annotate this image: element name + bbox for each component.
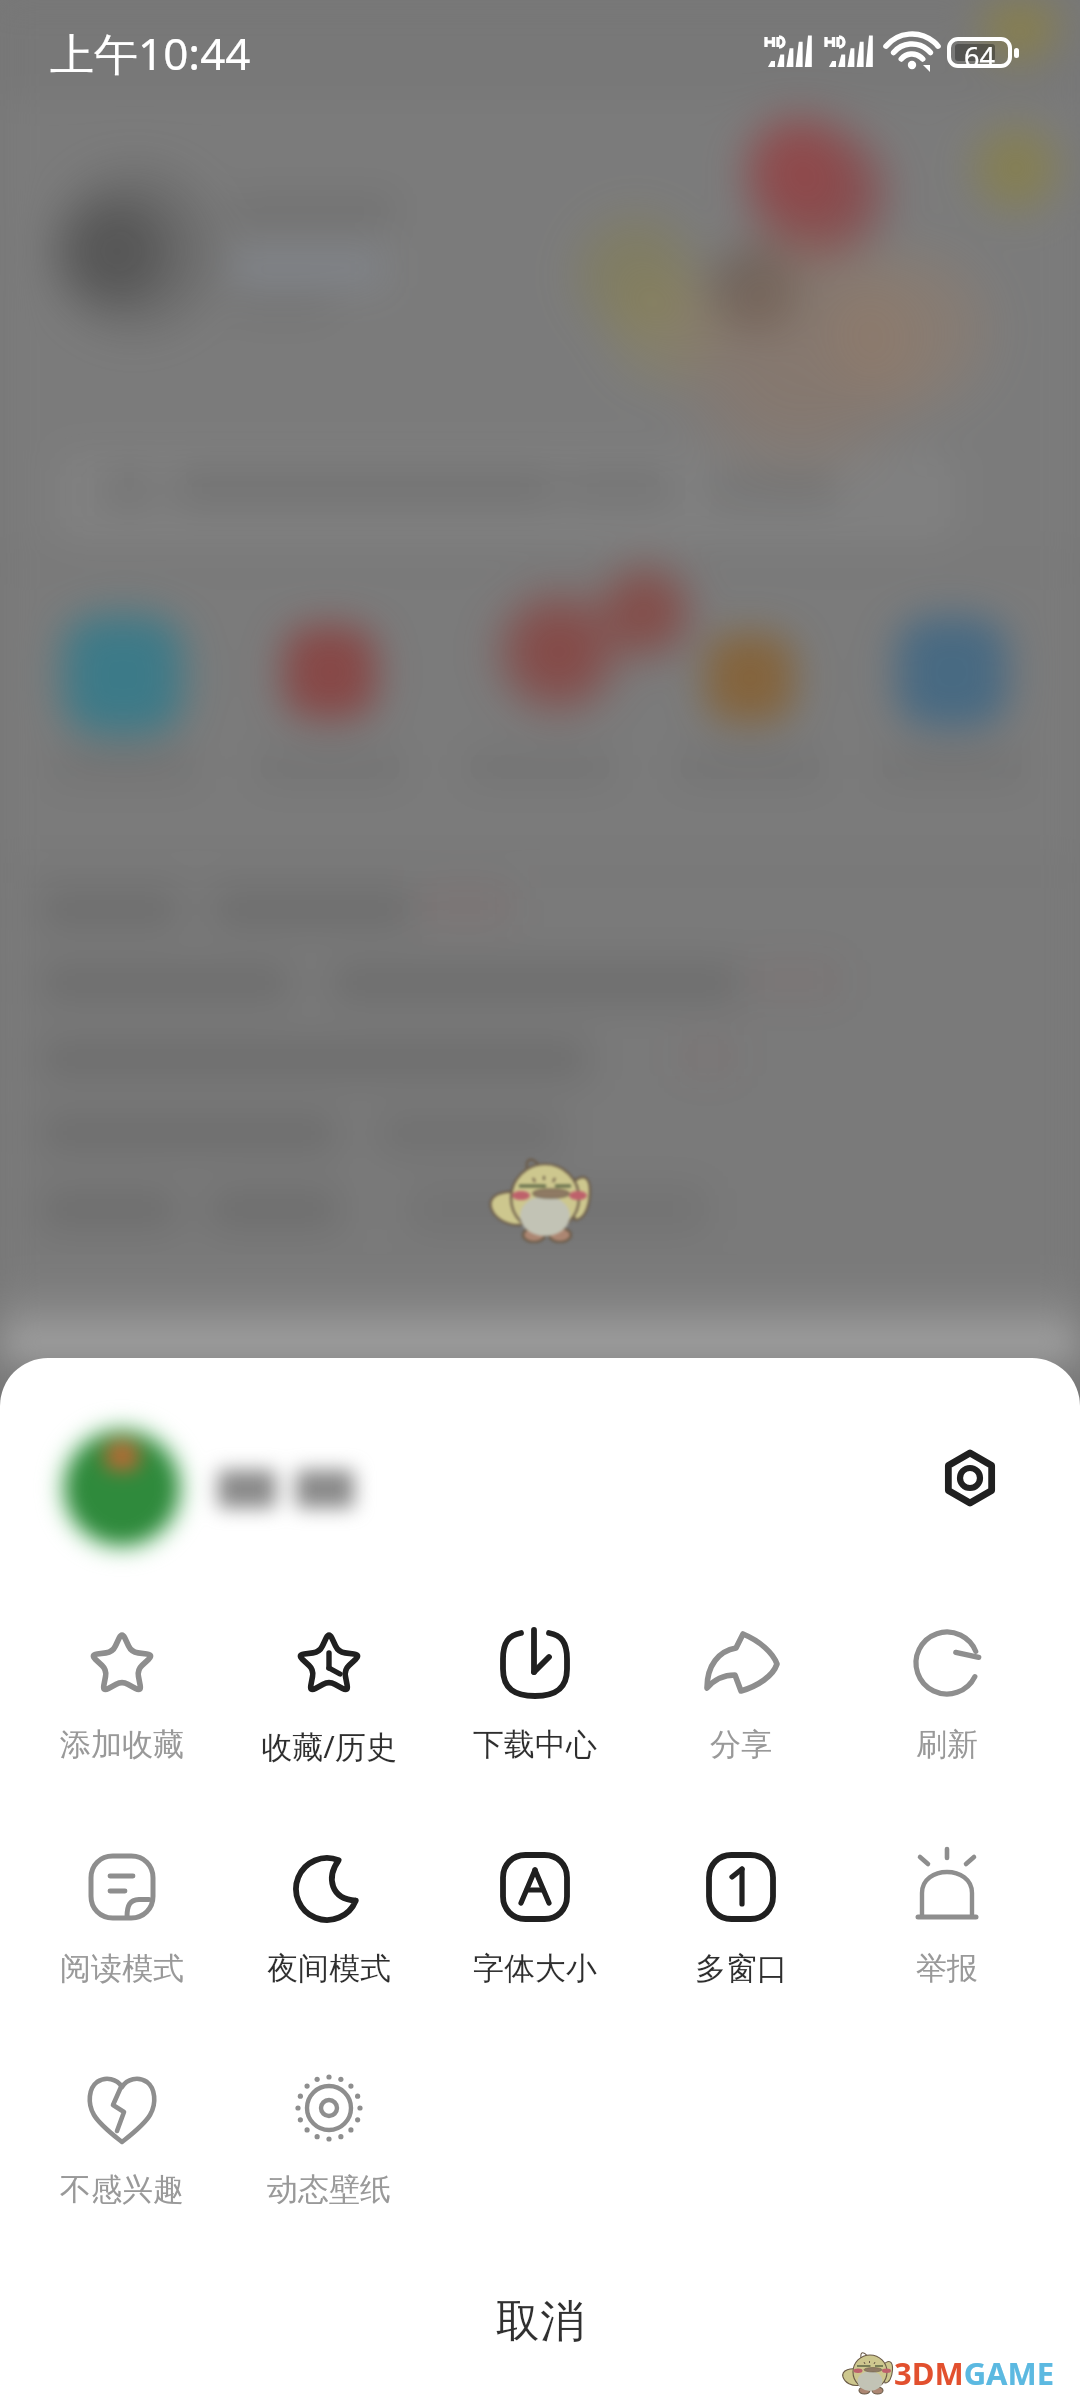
staticText: 刷新 bbox=[916, 1725, 978, 1764]
staticText: 多窗口 bbox=[695, 1949, 788, 1988]
button[interactable]: 刷新 bbox=[844, 1621, 1050, 1770]
button[interactable]: 添加收藏 bbox=[18, 1621, 225, 1770]
staticText: 收藏/历史 bbox=[261, 1725, 397, 1767]
staticText: 举报 bbox=[916, 1949, 978, 1988]
button[interactable]: 字体大小 bbox=[432, 1845, 638, 1994]
button[interactable]: 分享 bbox=[638, 1621, 844, 1770]
staticText: 夜间模式 bbox=[267, 1949, 391, 1988]
staticText: 64 bbox=[964, 38, 995, 75]
button[interactable]: 阅读模式 bbox=[18, 1845, 225, 1994]
button[interactable]: 动态壁纸 bbox=[225, 2066, 432, 2215]
button[interactable]: 多窗口 bbox=[638, 1845, 844, 1994]
button[interactable]: 不感兴趣 bbox=[18, 2066, 225, 2215]
staticText: 阅读模式 bbox=[60, 1949, 184, 1988]
staticText: 分享 bbox=[710, 1725, 772, 1764]
staticText: 上午10:44 bbox=[50, 23, 251, 83]
staticText: 动态壁纸 bbox=[267, 2170, 391, 2209]
staticText: 字体大小 bbox=[473, 1949, 597, 1988]
staticText: 取消 bbox=[496, 2294, 584, 2349]
button[interactable]: 取消 bbox=[0, 2242, 1080, 2400]
button[interactable]: 夜间模式 bbox=[225, 1845, 432, 1994]
staticText: 不感兴趣 bbox=[60, 2170, 184, 2209]
button[interactable]: 设置 bbox=[930, 1438, 1010, 1518]
button[interactable]: 下载中心 bbox=[432, 1621, 638, 1770]
staticText: 3DMGAME bbox=[894, 2352, 1055, 2394]
button[interactable]: 收藏/历史 bbox=[225, 1621, 432, 1773]
staticText: 添加收藏 bbox=[60, 1725, 184, 1764]
button[interactable]: 举报 bbox=[844, 1845, 1050, 1994]
staticText: 下载中心 bbox=[473, 1725, 597, 1764]
